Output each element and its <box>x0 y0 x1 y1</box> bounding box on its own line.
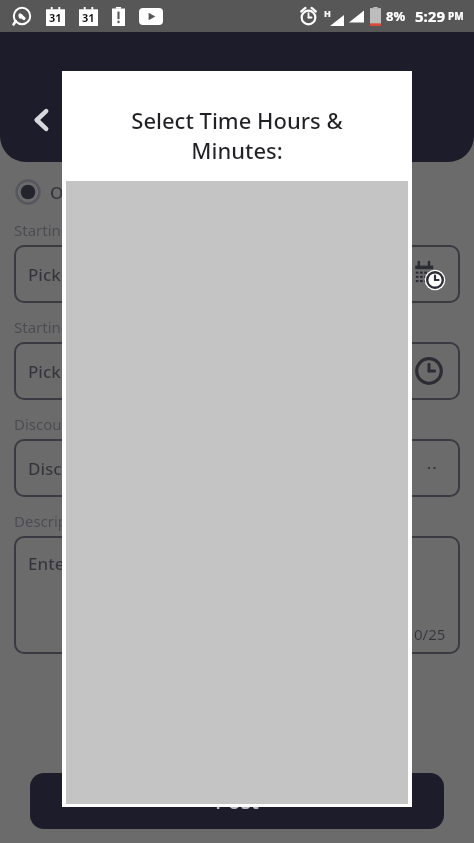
staticText: 5:29 <box>415 6 445 26</box>
staticText: Pick a Time <box>28 360 120 383</box>
staticText: 0/25 <box>414 624 446 644</box>
staticText: PM <box>448 9 464 23</box>
button[interactable]: Discount % <box>398 439 460 497</box>
staticText: Pick a Date <box>28 263 118 286</box>
button[interactable]: Offer <box>14 176 93 208</box>
staticText: 31 <box>82 10 95 25</box>
button[interactable]: Post <box>30 773 444 829</box>
staticText: Description <box>14 511 95 531</box>
staticText: Select Time Hours & Minutes: <box>84 105 390 165</box>
staticText: 31 <box>49 10 62 25</box>
button[interactable]: Back <box>20 98 64 142</box>
staticText: Discount % <box>28 457 119 480</box>
button[interactable]: Pick a Time <box>14 342 388 400</box>
button[interactable]: Pick a Date <box>14 245 388 303</box>
staticText: 8% <box>386 7 406 25</box>
staticText: H <box>324 7 331 19</box>
staticText: Enter Description <box>28 552 170 575</box>
staticText: Offer <box>50 181 93 204</box>
button[interactable]: Enter Description <box>14 536 460 654</box>
staticText: Starting Date <box>14 220 108 240</box>
staticText: Starting Time <box>14 317 109 337</box>
button[interactable]: Pick a Date <box>398 245 460 303</box>
staticText: Post <box>215 787 259 816</box>
staticText: Discount <box>14 414 77 434</box>
button[interactable]: Discount % <box>14 439 388 497</box>
button[interactable]: Pick a Time <box>398 342 460 400</box>
